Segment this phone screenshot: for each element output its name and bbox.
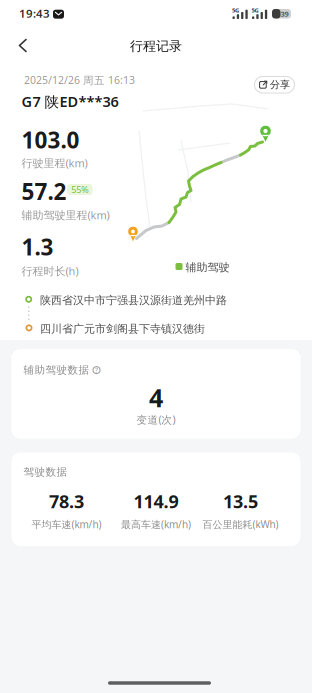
- button[interactable]: ?: [92, 366, 100, 375]
- staticText: 分享: [270, 78, 290, 91]
- staticText: 行程时长(h): [21, 263, 78, 278]
- staticText: 四川省广元市剑阁县下寺镇汉德街: [40, 322, 205, 336]
- staticText: ?: [95, 366, 98, 375]
- staticText: G7 陕ED***36: [21, 91, 118, 111]
- button[interactable]: 分享: [254, 76, 295, 93]
- staticText: 19:43: [19, 5, 50, 21]
- staticText: 55%: [71, 183, 88, 196]
- staticText: 39: [280, 9, 288, 19]
- staticText: 5G: [251, 6, 258, 14]
- staticText: 行驶里程(km): [21, 155, 87, 170]
- staticText: 百公里能耗(kWh): [202, 517, 278, 531]
- button[interactable]: [0, 0, 44, 60]
- staticText: 114.9: [133, 489, 178, 513]
- staticText: 78.3: [49, 489, 84, 513]
- staticText: 最高车速(km/h): [121, 517, 191, 531]
- staticText: 13.5: [223, 489, 258, 513]
- staticText: 陕西省汉中市宁强县汉源街道羌州中路: [40, 293, 227, 307]
- staticText: 4: [149, 380, 163, 414]
- staticText: 57.2: [21, 176, 66, 207]
- staticText: 驾驶数据: [23, 465, 67, 479]
- staticText: 2025/12/26 周五 16:13: [24, 73, 135, 87]
- staticText: 1.3: [21, 231, 53, 262]
- staticText: 平均车速(km/h): [31, 517, 101, 531]
- staticText: 辅助驾驶里程(km): [21, 207, 109, 222]
- staticText: 103.0: [21, 124, 79, 155]
- staticText: 辅助驾驶: [185, 260, 229, 274]
- staticText: 变道(次): [136, 412, 175, 427]
- staticText: 辅助驾驶数据: [23, 363, 89, 377]
- staticText: 5G: [232, 6, 239, 14]
- staticText: 行程记录: [130, 38, 182, 54]
